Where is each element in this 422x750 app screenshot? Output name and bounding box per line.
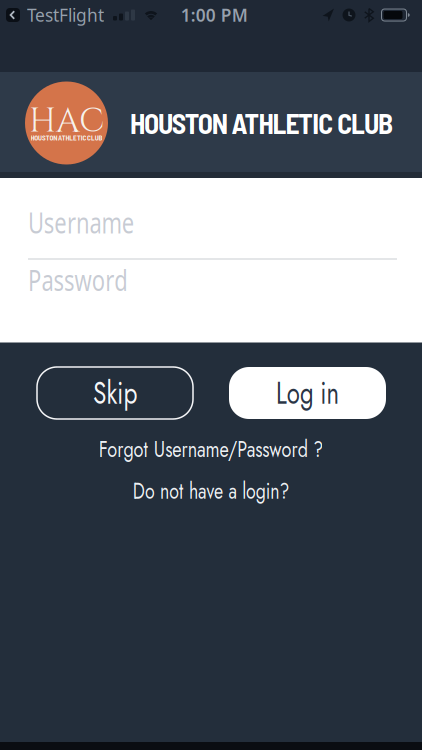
staticText: Log in xyxy=(267,371,348,415)
button[interactable]: Log in xyxy=(229,367,386,419)
staticText: HOUSTON ATHLETIC CLUB xyxy=(130,106,393,140)
staticText: Do not have a login? xyxy=(108,474,314,507)
button[interactable]: Username xyxy=(0,200,422,244)
staticText: HOUSTON ATHLETIC CLUB xyxy=(30,133,102,142)
staticText: Forgot Username/Password ? xyxy=(66,432,356,466)
staticText: Password xyxy=(28,260,161,299)
staticText: Skip xyxy=(87,371,142,415)
button[interactable]: Skip xyxy=(37,367,193,419)
staticText: TestFlight xyxy=(27,3,104,26)
staticText: Username xyxy=(28,202,170,241)
button[interactable]: Do not have a login? xyxy=(108,474,314,507)
button[interactable]: Back to TestFlight xyxy=(6,3,104,26)
button[interactable]: Password xyxy=(0,259,422,299)
staticText: HAC xyxy=(29,99,104,144)
staticText: 1:00 PM xyxy=(181,3,248,26)
button[interactable]: Forgot Username/Password ? xyxy=(66,432,356,466)
